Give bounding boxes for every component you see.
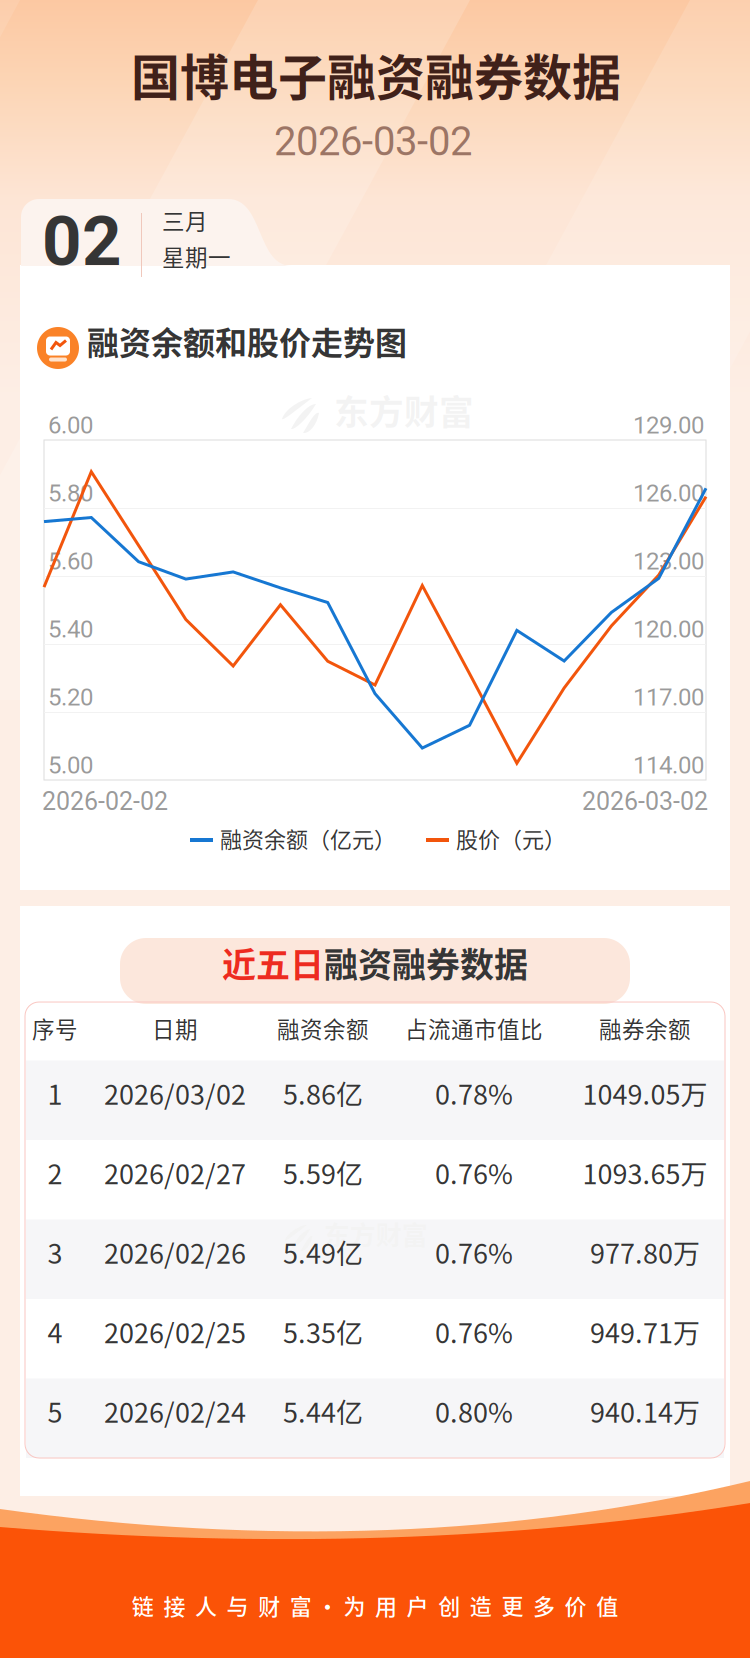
staticText: 5.86亿 bbox=[283, 1073, 363, 1112]
staticText: 5.00 bbox=[48, 751, 93, 779]
staticText: 2026/02/24 bbox=[104, 1391, 246, 1430]
staticText: 5.35亿 bbox=[283, 1312, 363, 1351]
staticText: 价 bbox=[565, 1589, 587, 1621]
staticText: 1049.05万 bbox=[582, 1073, 707, 1112]
staticText: 星期一 bbox=[162, 240, 231, 273]
staticText: 1 bbox=[47, 1073, 62, 1112]
staticText: 2026-03-02 bbox=[274, 118, 472, 165]
staticText: 富 bbox=[290, 1589, 312, 1621]
staticText: 更 bbox=[501, 1589, 523, 1621]
staticText: 3 bbox=[47, 1232, 62, 1271]
staticText: 融券余额 bbox=[599, 1012, 691, 1045]
staticText: 链 bbox=[132, 1589, 154, 1621]
staticText: 949.71万 bbox=[590, 1312, 700, 1351]
staticText: 5 bbox=[47, 1391, 62, 1430]
staticText: 117.00 bbox=[633, 683, 704, 711]
staticText: 三月 bbox=[162, 204, 208, 237]
staticText: 940.14万 bbox=[590, 1391, 700, 1430]
staticText: 融资余额和股价走势图 bbox=[87, 318, 407, 364]
staticText: 融资余额（亿元） bbox=[220, 822, 396, 854]
staticText: 2026/02/26 bbox=[104, 1232, 246, 1271]
staticText: 序号 bbox=[32, 1012, 78, 1045]
staticText: 2026/03/02 bbox=[104, 1073, 246, 1112]
staticText: 5.59亿 bbox=[283, 1153, 363, 1192]
staticText: 2026/02/27 bbox=[104, 1153, 246, 1192]
staticText: 造 bbox=[470, 1589, 492, 1621]
staticText: 与 bbox=[227, 1589, 249, 1621]
staticText: 123.00 bbox=[633, 547, 704, 575]
staticText: 0.78% bbox=[435, 1073, 513, 1112]
staticText: 0.76% bbox=[435, 1153, 513, 1192]
staticText: 融资融券数据 bbox=[324, 938, 528, 987]
staticText: 值 bbox=[596, 1589, 618, 1621]
staticText: 5.44亿 bbox=[283, 1391, 363, 1430]
staticText: 为 bbox=[343, 1589, 365, 1621]
staticText: 财 bbox=[258, 1589, 280, 1621]
staticText: 126.00 bbox=[633, 479, 704, 507]
staticText: 用 bbox=[375, 1589, 397, 1621]
staticText: 5.20 bbox=[48, 683, 93, 711]
staticText: 0.76% bbox=[435, 1312, 513, 1351]
staticText: 多 bbox=[533, 1589, 555, 1621]
staticText: 0.76% bbox=[435, 1232, 513, 1271]
staticText: 5.80 bbox=[48, 479, 93, 507]
staticText: 2026-03-02 bbox=[582, 787, 708, 816]
staticText: 2026-02-02 bbox=[42, 787, 168, 816]
staticText: 2 bbox=[47, 1153, 62, 1192]
staticText: 5.49亿 bbox=[283, 1232, 363, 1271]
staticText: 国博电子融资融券数据 bbox=[131, 39, 621, 110]
staticText: 02 bbox=[42, 201, 122, 282]
staticText: 东方财富 bbox=[324, 1215, 428, 1252]
staticText: 2026/02/25 bbox=[104, 1312, 246, 1351]
staticText: 5.60 bbox=[48, 547, 93, 575]
staticText: 120.00 bbox=[633, 615, 704, 643]
staticText: 接 bbox=[163, 1589, 185, 1621]
staticText: 6.00 bbox=[48, 411, 93, 439]
staticText: 融资余额 bbox=[277, 1012, 369, 1045]
staticText: 1093.65万 bbox=[582, 1153, 707, 1192]
staticText: 股价（元） bbox=[456, 822, 566, 854]
staticText: 创 bbox=[438, 1589, 460, 1621]
staticText: 近五日 bbox=[222, 938, 324, 987]
staticText: · bbox=[317, 1589, 339, 1621]
staticText: 5.40 bbox=[48, 615, 93, 643]
staticText: 114.00 bbox=[633, 751, 704, 779]
staticText: 0.80% bbox=[435, 1391, 513, 1430]
staticText: 4 bbox=[47, 1312, 62, 1351]
staticText: 户 bbox=[407, 1589, 429, 1621]
staticText: 977.80万 bbox=[590, 1232, 700, 1271]
staticText: 占流通市值比 bbox=[405, 1012, 543, 1045]
staticText: 人 bbox=[195, 1589, 217, 1621]
staticText: 129.00 bbox=[633, 411, 704, 439]
staticText: 东方财富 bbox=[334, 385, 474, 435]
staticText: 日期 bbox=[152, 1012, 198, 1045]
